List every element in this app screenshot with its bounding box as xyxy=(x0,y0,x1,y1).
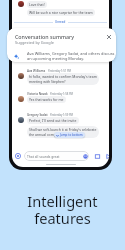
button[interactable]: Gallery xyxy=(94,151,100,161)
button[interactable]: Jump to bottom xyxy=(54,132,85,138)
staticText: meeting with Stephen? xyxy=(29,79,66,84)
staticText: Yesterday 1:51 PM xyxy=(48,69,72,73)
button[interactable]: Send xyxy=(105,151,109,161)
staticText: an upcoming meeting Monday. xyxy=(27,56,85,61)
staticText: Unread xyxy=(55,20,66,24)
staticText: Yesterday 1:58 PM xyxy=(50,92,74,96)
staticText: the annual company offsite? xyxy=(29,132,74,137)
staticText: Love that! xyxy=(29,2,45,7)
staticText: Ava Williams, Gregory Sadat, and others … xyxy=(27,51,115,56)
staticText: Yes that works for me xyxy=(29,97,64,102)
staticText: Ava Williams xyxy=(27,69,46,73)
staticText: Jump to bottom xyxy=(60,133,83,137)
button[interactable]: Add attachment xyxy=(15,151,21,161)
staticText: Shall we soft-launch it at Friday's cele… xyxy=(29,127,97,132)
button[interactable]: Conversation summary xyxy=(7,28,116,62)
staticText: Intelligent features xyxy=(27,191,98,228)
staticText: hi folks, wanted to confirm Monday's tea… xyxy=(29,74,97,79)
staticText: Conversation summary xyxy=(15,33,74,40)
staticText: Gregory Sadat xyxy=(27,113,48,117)
staticText: Yesterday 1:59 PM xyxy=(50,113,74,117)
staticText: Victoria Novak xyxy=(27,92,48,96)
staticText: Suggested by Google xyxy=(15,40,54,45)
button[interactable]: Close xyxy=(104,32,113,41)
staticText: That all sounds great xyxy=(27,154,60,158)
staticText: Perfect, I'll send out the invite xyxy=(29,118,77,123)
button[interactable]: Emoji xyxy=(82,151,88,161)
button[interactable]: That all sounds great xyxy=(24,151,89,161)
staticText: Will be such a nice surprise for the tea… xyxy=(29,10,93,15)
